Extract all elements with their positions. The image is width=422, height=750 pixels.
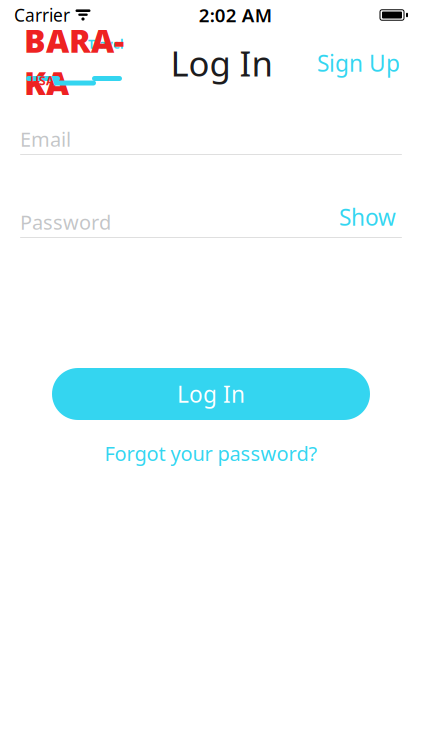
staticText: Log In [177, 379, 245, 409]
button[interactable]: Sign Up [313, 40, 404, 86]
staticText: Email [20, 126, 71, 152]
button[interactable]: Log In [52, 368, 370, 420]
staticText: Password [20, 209, 111, 235]
button[interactable]: Show [333, 199, 402, 235]
button[interactable]: Forgot your password? [96, 434, 325, 473]
staticText: USA [30, 72, 54, 88]
staticText: Travel [88, 36, 124, 52]
staticText: Log In [170, 40, 272, 86]
staticText: Sign Up [317, 48, 400, 78]
staticText: 2:02 AM [199, 3, 272, 27]
button[interactable]: Baraka Travel USA [18, 37, 130, 89]
staticText: Show [339, 202, 396, 232]
staticText: Carrier [14, 3, 70, 26]
staticText: BARAKA [24, 19, 124, 104]
staticText: Forgot your password? [104, 440, 317, 467]
